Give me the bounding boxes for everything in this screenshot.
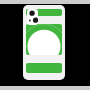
- button[interactable]: [26, 63, 62, 73]
- button[interactable]: GOOGLE PLAY: [23, 5, 65, 80]
